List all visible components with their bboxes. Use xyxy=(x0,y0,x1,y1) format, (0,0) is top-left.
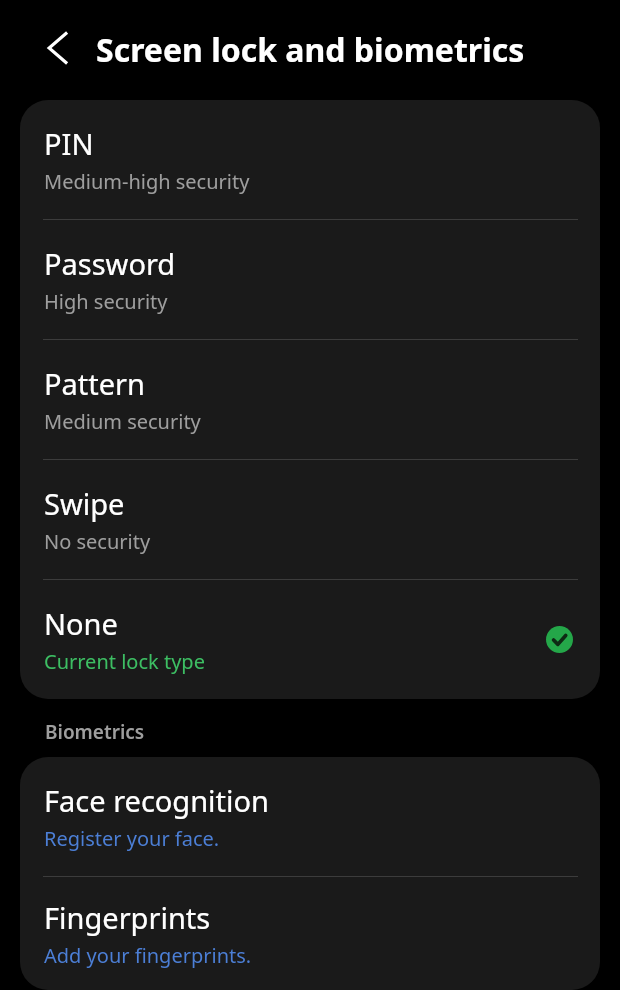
staticText: Face recognition xyxy=(44,781,270,820)
button[interactable]: Fingerprints xyxy=(20,877,600,990)
button[interactable]: Face recognition xyxy=(20,757,600,876)
staticText: Medium-high security xyxy=(44,168,250,195)
staticText: Add your fingerprints. xyxy=(44,942,252,969)
button[interactable]: PIN xyxy=(20,100,600,219)
staticText: Medium security xyxy=(44,408,201,435)
staticText: Register your face. xyxy=(44,825,220,852)
staticText: Password xyxy=(44,244,176,283)
button[interactable]: None xyxy=(20,580,600,699)
staticText: Biometrics xyxy=(45,719,145,745)
button[interactable]: Pattern xyxy=(20,340,600,459)
staticText: Current lock type xyxy=(44,648,205,675)
staticText: High security xyxy=(44,288,168,315)
button[interactable]: Back xyxy=(36,27,78,69)
staticText: No security xyxy=(44,528,151,555)
staticText: Fingerprints xyxy=(44,898,211,937)
staticText: None xyxy=(44,604,118,643)
staticText: Swipe xyxy=(44,484,125,523)
staticText: Screen lock and biometrics xyxy=(96,28,525,72)
staticText: PIN xyxy=(44,124,94,163)
staticText: Pattern xyxy=(44,364,146,403)
button[interactable]: Swipe xyxy=(20,460,600,579)
button[interactable]: Password xyxy=(20,220,600,339)
